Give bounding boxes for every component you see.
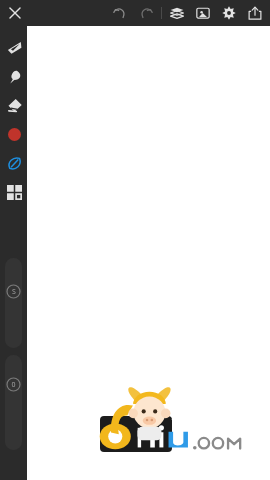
button[interactable]: Shape xyxy=(1,150,27,176)
button[interactable]: Grid xyxy=(1,179,27,205)
button[interactable]: Image xyxy=(190,0,216,26)
button[interactable]: Opacity xyxy=(5,355,22,450)
button[interactable]: Brush size xyxy=(5,258,22,348)
button[interactable]: Color xyxy=(1,121,27,147)
button[interactable]: Smudge xyxy=(1,63,27,89)
button[interactable]: Pen xyxy=(1,34,27,60)
staticText: 0 xyxy=(11,380,16,390)
button[interactable]: Redo xyxy=(133,0,159,26)
button[interactable]: Share xyxy=(242,0,268,26)
button[interactable]: Layers xyxy=(164,0,190,26)
button[interactable]: Undo xyxy=(107,0,133,26)
button[interactable]: Close xyxy=(2,0,28,26)
staticText: S xyxy=(12,287,16,297)
button[interactable]: Settings xyxy=(216,0,242,26)
button[interactable]: Eraser xyxy=(1,92,27,118)
